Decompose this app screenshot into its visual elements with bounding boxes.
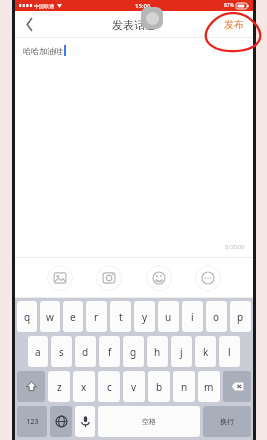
button[interactable]: Voice input (75, 406, 95, 437)
staticText: l (228, 345, 231, 359)
staticText: t (119, 310, 123, 324)
button[interactable]: Camera (96, 265, 122, 291)
staticText: 中国联通 (34, 3, 54, 9)
button[interactable]: x (73, 371, 95, 402)
button[interactable]: d (75, 336, 96, 367)
button[interactable]: 空格 (98, 406, 200, 437)
button[interactable]: Shift (17, 371, 45, 402)
staticText: 哈哈加油哇 (23, 46, 63, 56)
staticText: 5/2000 (225, 243, 245, 251)
staticText: 15:06 (135, 2, 151, 10)
staticText: q (24, 310, 31, 324)
button[interactable]: t (110, 301, 131, 332)
button[interactable]: i (182, 301, 203, 332)
button[interactable]: g (123, 336, 144, 367)
button[interactable]: Emoji (146, 265, 172, 291)
button[interactable]: 发布 (220, 14, 248, 35)
button[interactable]: l (219, 336, 240, 367)
button[interactable]: 换行 (203, 406, 251, 437)
staticText: 发表话题 (112, 18, 156, 32)
staticText: e (70, 310, 76, 324)
staticText: i (191, 310, 194, 324)
button[interactable]: n (173, 371, 195, 402)
staticText: v (131, 380, 137, 394)
staticText: 发布 (224, 18, 244, 31)
button[interactable]: w (40, 301, 60, 332)
staticText: z (57, 380, 62, 394)
staticText: n (181, 380, 188, 394)
button[interactable]: a (28, 336, 48, 367)
staticText: m (204, 380, 214, 394)
staticText: 123 (26, 417, 39, 427)
button[interactable]: f (99, 336, 120, 367)
button[interactable]: s (51, 336, 72, 367)
staticText: u (165, 310, 172, 324)
staticText: j (180, 345, 183, 359)
staticText: 空格 (142, 417, 156, 426)
button[interactable]: Add image (47, 265, 73, 291)
button[interactable]: m (198, 371, 220, 402)
button[interactable]: v (123, 371, 145, 402)
staticText: r (94, 310, 99, 324)
button[interactable]: z (48, 371, 70, 402)
staticText: g (130, 345, 137, 359)
staticText: a (35, 345, 41, 359)
button[interactable]: 123 (17, 406, 47, 437)
button[interactable]: o (206, 301, 227, 332)
button[interactable]: y (134, 301, 155, 332)
button[interactable]: u (158, 301, 179, 332)
staticText: p (237, 310, 244, 324)
button[interactable]: h (147, 336, 168, 367)
button[interactable]: More (195, 265, 221, 291)
staticText: h (154, 345, 161, 359)
button[interactable]: e (63, 301, 83, 332)
staticText: 87% (224, 2, 234, 9)
button[interactable]: q (17, 301, 37, 332)
staticText: w (46, 310, 54, 324)
button[interactable]: Switch language (50, 406, 72, 437)
staticText: o (213, 310, 220, 324)
staticText: c (107, 380, 112, 394)
staticText: b (156, 380, 163, 394)
button[interactable]: b (148, 371, 170, 402)
button[interactable]: j (171, 336, 192, 367)
button[interactable]: r (86, 301, 107, 332)
staticText: 换行 (220, 417, 234, 426)
button[interactable]: Delete (223, 371, 251, 402)
staticText: s (59, 345, 64, 359)
button[interactable]: c (98, 371, 120, 402)
staticText: k (203, 345, 209, 359)
button[interactable]: p (230, 301, 251, 332)
staticText: y (142, 310, 148, 324)
staticText: f (108, 345, 112, 359)
button[interactable]: Back (15, 11, 45, 38)
button[interactable]: k (195, 336, 216, 367)
staticText: x (81, 380, 87, 394)
staticText: d (82, 345, 89, 359)
